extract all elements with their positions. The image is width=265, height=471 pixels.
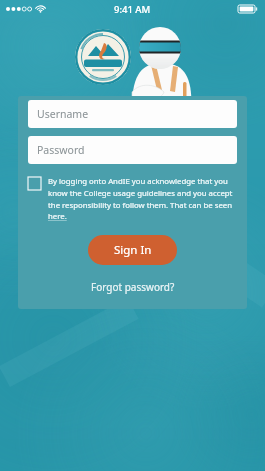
staticText: Username xyxy=(37,107,89,121)
staticText: By logging onto AndIE you acknowledge th… xyxy=(48,176,235,211)
staticText: Password xyxy=(37,143,85,157)
staticText: Forgot password? xyxy=(91,280,175,294)
button[interactable]: here. xyxy=(48,211,67,222)
staticText: 9:41 AM xyxy=(114,3,151,16)
staticText: here. xyxy=(48,211,67,222)
button[interactable]: Accept usage guidelines xyxy=(28,176,235,222)
other: Accept usage guidelines xyxy=(28,177,41,190)
button[interactable]: Forgot password? xyxy=(85,278,181,296)
button[interactable]: Password xyxy=(28,136,237,164)
button[interactable]: Username xyxy=(28,100,237,128)
button[interactable]: Sign In xyxy=(88,235,177,265)
staticText: Sign In xyxy=(114,242,152,258)
